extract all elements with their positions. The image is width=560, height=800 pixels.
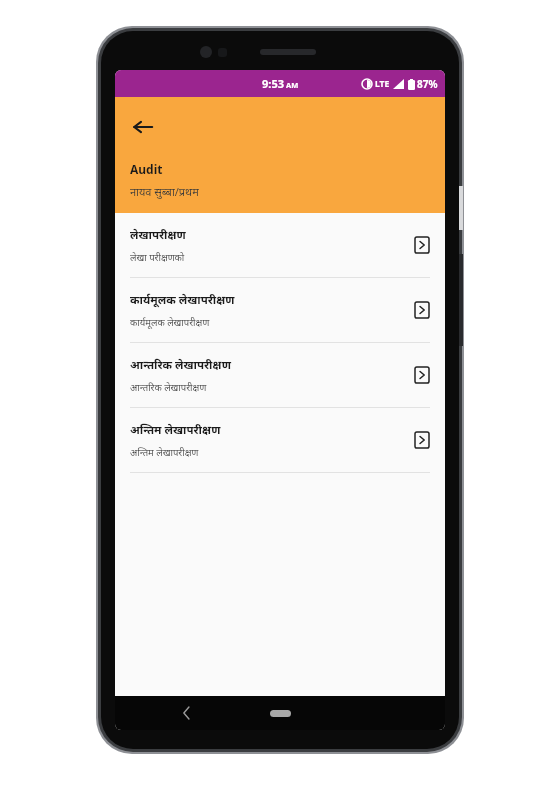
- staticText: आन्तरिक लेखापरीक्षण: [130, 381, 207, 394]
- staticText: आन्तरिक लेखापरीक्षण: [130, 357, 231, 373]
- staticText: अन्तिम लेखापरीक्षण: [130, 446, 199, 459]
- button[interactable]: अन्तिम लेखापरीक्षण: [115, 408, 445, 472]
- staticText: अन्तिम लेखापरीक्षण: [130, 422, 221, 438]
- staticText: नायव सुब्बा/प्रथम: [130, 184, 199, 199]
- staticText: लेखापरीक्षण: [130, 227, 186, 243]
- staticText: AM: [286, 80, 299, 90]
- button[interactable]: Open: [411, 429, 433, 451]
- staticText: कार्यमूलक लेखापरीक्षण: [130, 316, 210, 329]
- staticText: 9:53: [262, 76, 284, 91]
- button[interactable]: Open: [411, 364, 433, 386]
- staticText: कार्यमूलक लेखापरीक्षण: [130, 292, 235, 308]
- staticText: LTE: [375, 78, 390, 90]
- button[interactable]: Home: [270, 710, 291, 717]
- staticText: 87%: [417, 77, 438, 91]
- button[interactable]: Open: [411, 234, 433, 256]
- button[interactable]: आन्तरिक लेखापरीक्षण: [115, 343, 445, 407]
- button[interactable]: कार्यमूलक लेखापरीक्षण: [115, 278, 445, 342]
- button[interactable]: Open: [411, 299, 433, 321]
- button[interactable]: Back: [173, 700, 199, 726]
- button[interactable]: Back: [123, 107, 163, 147]
- button[interactable]: लेखापरीक्षण: [115, 213, 445, 277]
- staticText: लेखा परीक्षणको: [130, 251, 185, 264]
- staticText: Audit: [130, 161, 163, 177]
